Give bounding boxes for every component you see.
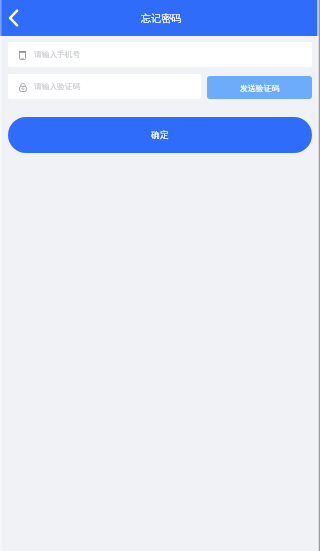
button[interactable]: 确定 [8, 117, 312, 153]
button[interactable]: 请输入验证码 [8, 74, 201, 99]
staticText: 请输入手机号 [34, 50, 81, 60]
staticText: 请输入验证码 [34, 82, 81, 92]
staticText: 发送验证码 [240, 83, 280, 93]
button[interactable]: Back [0, 5, 26, 31]
staticText: 忘记密码 [141, 12, 181, 25]
staticText: 确定 [151, 130, 169, 141]
button[interactable]: 发送验证码 [207, 76, 312, 99]
button[interactable]: 请输入手机号 [8, 42, 312, 67]
